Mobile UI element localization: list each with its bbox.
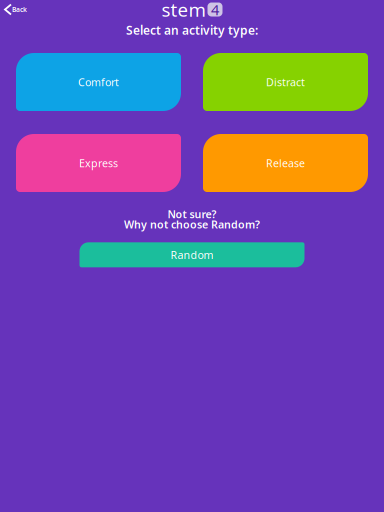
button[interactable]: Random: [79, 242, 304, 267]
staticText: Not sure?: [167, 207, 216, 221]
staticText: Why not choose Random?: [124, 217, 260, 231]
staticText: Back: [12, 5, 27, 14]
staticText: 4: [211, 0, 219, 19]
staticText: Select an activity type:: [126, 22, 258, 38]
button[interactable]: Release: [203, 134, 368, 192]
staticText: Random: [170, 248, 213, 262]
button[interactable]: Distract: [203, 53, 368, 111]
staticText: stem: [161, 0, 205, 22]
staticText: Distract: [266, 75, 305, 89]
staticText: Express: [79, 156, 118, 170]
button[interactable]: Back: [0, 0, 35, 18]
staticText: Release: [266, 156, 305, 170]
button[interactable]: Express: [16, 134, 181, 192]
button[interactable]: Comfort: [16, 53, 181, 111]
staticText: Comfort: [78, 75, 119, 89]
